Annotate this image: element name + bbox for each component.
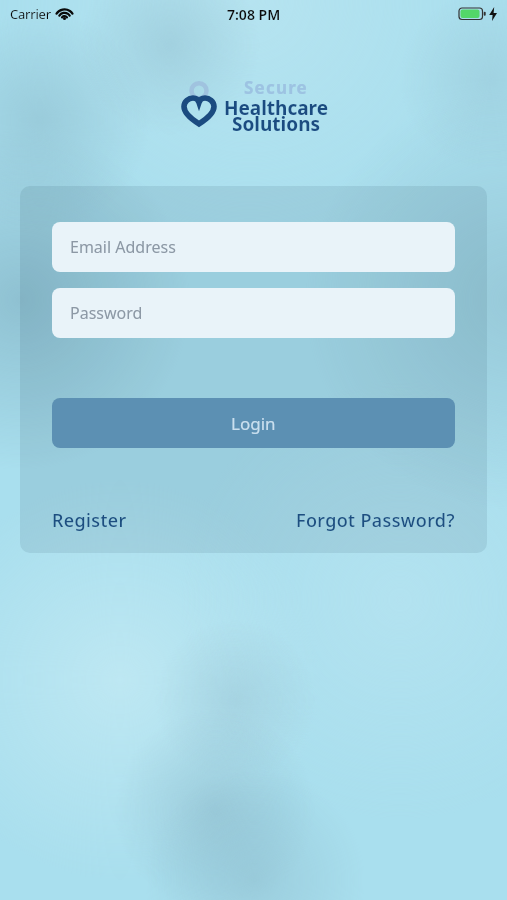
button[interactable]: Register: [52, 508, 127, 533]
button[interactable]: Email Address: [52, 222, 455, 272]
staticText: Email Address: [70, 236, 176, 258]
staticText: Secure: [196, 76, 356, 99]
staticText: Password: [70, 302, 143, 324]
staticText: Solutions: [196, 111, 356, 137]
button[interactable]: Forgot Password?: [296, 508, 455, 533]
staticText: Login: [231, 412, 276, 435]
staticText: Healthcare: [196, 95, 356, 121]
staticText: Register: [52, 508, 127, 533]
button[interactable]: Password: [52, 288, 455, 338]
button[interactable]: Login: [52, 398, 455, 448]
staticText: 7:08 PM: [227, 5, 281, 24]
staticText: Carrier: [10, 5, 51, 23]
staticText: Forgot Password?: [296, 508, 455, 533]
